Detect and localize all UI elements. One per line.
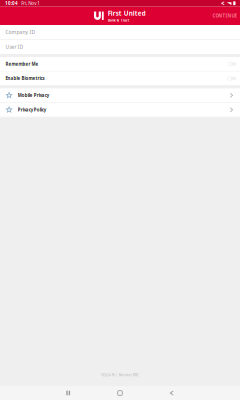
staticText: 10:04 [5, 0, 18, 6]
button[interactable]: Back [160, 386, 184, 400]
staticText: Fri, Nov 1 [21, 0, 40, 6]
staticText: Enable Biometrics [5, 75, 44, 81]
button[interactable]: Mobile Privacy [0, 88, 240, 103]
staticText: First United [108, 9, 146, 17]
button[interactable]: User ID [0, 40, 240, 54]
button[interactable]: Privacy Policy [0, 103, 240, 117]
staticText: Privacy Policy [18, 107, 46, 113]
staticText: Bank & Trust [108, 18, 129, 22]
button[interactable]: Enable Biometrics [0, 71, 240, 86]
staticText: User ID [5, 43, 23, 50]
button[interactable]: Company ID [0, 25, 240, 40]
staticText: Company ID [5, 29, 35, 35]
button[interactable]: Home [108, 386, 132, 400]
staticText: Remember Me [5, 61, 38, 67]
button[interactable]: Remember Me [0, 57, 240, 71]
staticText: ©2024 FU | Member FDIC [101, 373, 139, 377]
button[interactable]: CONTINUE [208, 9, 240, 23]
staticText: CONTINUE [212, 13, 236, 19]
button[interactable]: Recent apps [56, 386, 80, 400]
staticText: Mobile Privacy [18, 92, 49, 98]
